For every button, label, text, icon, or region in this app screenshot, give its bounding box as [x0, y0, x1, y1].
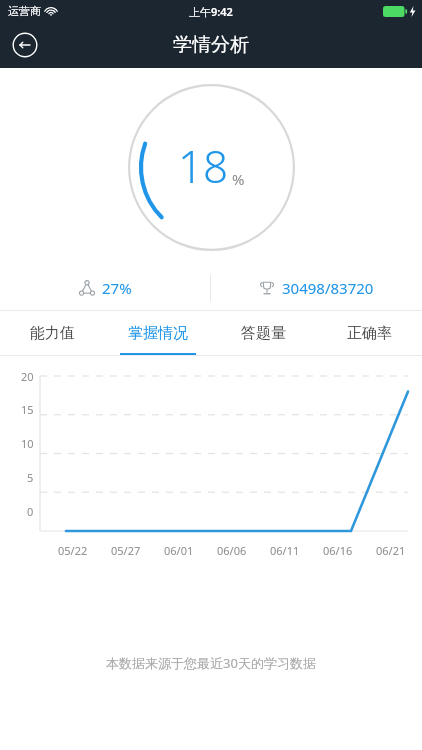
button[interactable]: 能力值: [0, 311, 105, 355]
staticText: 06/21: [376, 543, 406, 558]
staticText: 上午9:42: [189, 4, 233, 19]
staticText: 掌握情况: [128, 324, 188, 343]
staticText: 06/06: [217, 543, 247, 558]
staticText: 06/11: [270, 543, 300, 558]
staticText: 答题量: [241, 324, 286, 343]
staticText: 10: [21, 436, 34, 451]
staticText: 5: [27, 470, 34, 485]
staticText: 学情分析: [173, 33, 249, 57]
staticText: 正确率: [347, 324, 392, 343]
button[interactable]: 答题量: [210, 311, 316, 355]
button[interactable]: 30498/83720: [211, 266, 422, 310]
staticText: 06/16: [323, 543, 353, 558]
staticText: 05/27: [111, 543, 141, 558]
staticText: 能力值: [30, 324, 75, 343]
button[interactable]: 正确率: [316, 311, 422, 355]
staticText: 27%: [102, 278, 132, 298]
staticText: 0: [27, 504, 34, 519]
staticText: 20: [21, 369, 34, 384]
staticText: 本数据来源于您最近30天的学习数据: [0, 654, 422, 672]
staticText: 06/01: [164, 543, 194, 558]
button[interactable]: 27%: [0, 266, 210, 310]
staticText: 05/22: [58, 543, 88, 558]
staticText: 15: [21, 402, 34, 417]
button[interactable]: 掌握情况: [105, 311, 210, 355]
staticText: 30498/83720: [282, 278, 374, 298]
staticText: 运营商: [8, 4, 41, 18]
staticText: %: [232, 169, 245, 189]
button[interactable]: Back: [8, 28, 42, 62]
staticText: 18: [178, 136, 229, 196]
